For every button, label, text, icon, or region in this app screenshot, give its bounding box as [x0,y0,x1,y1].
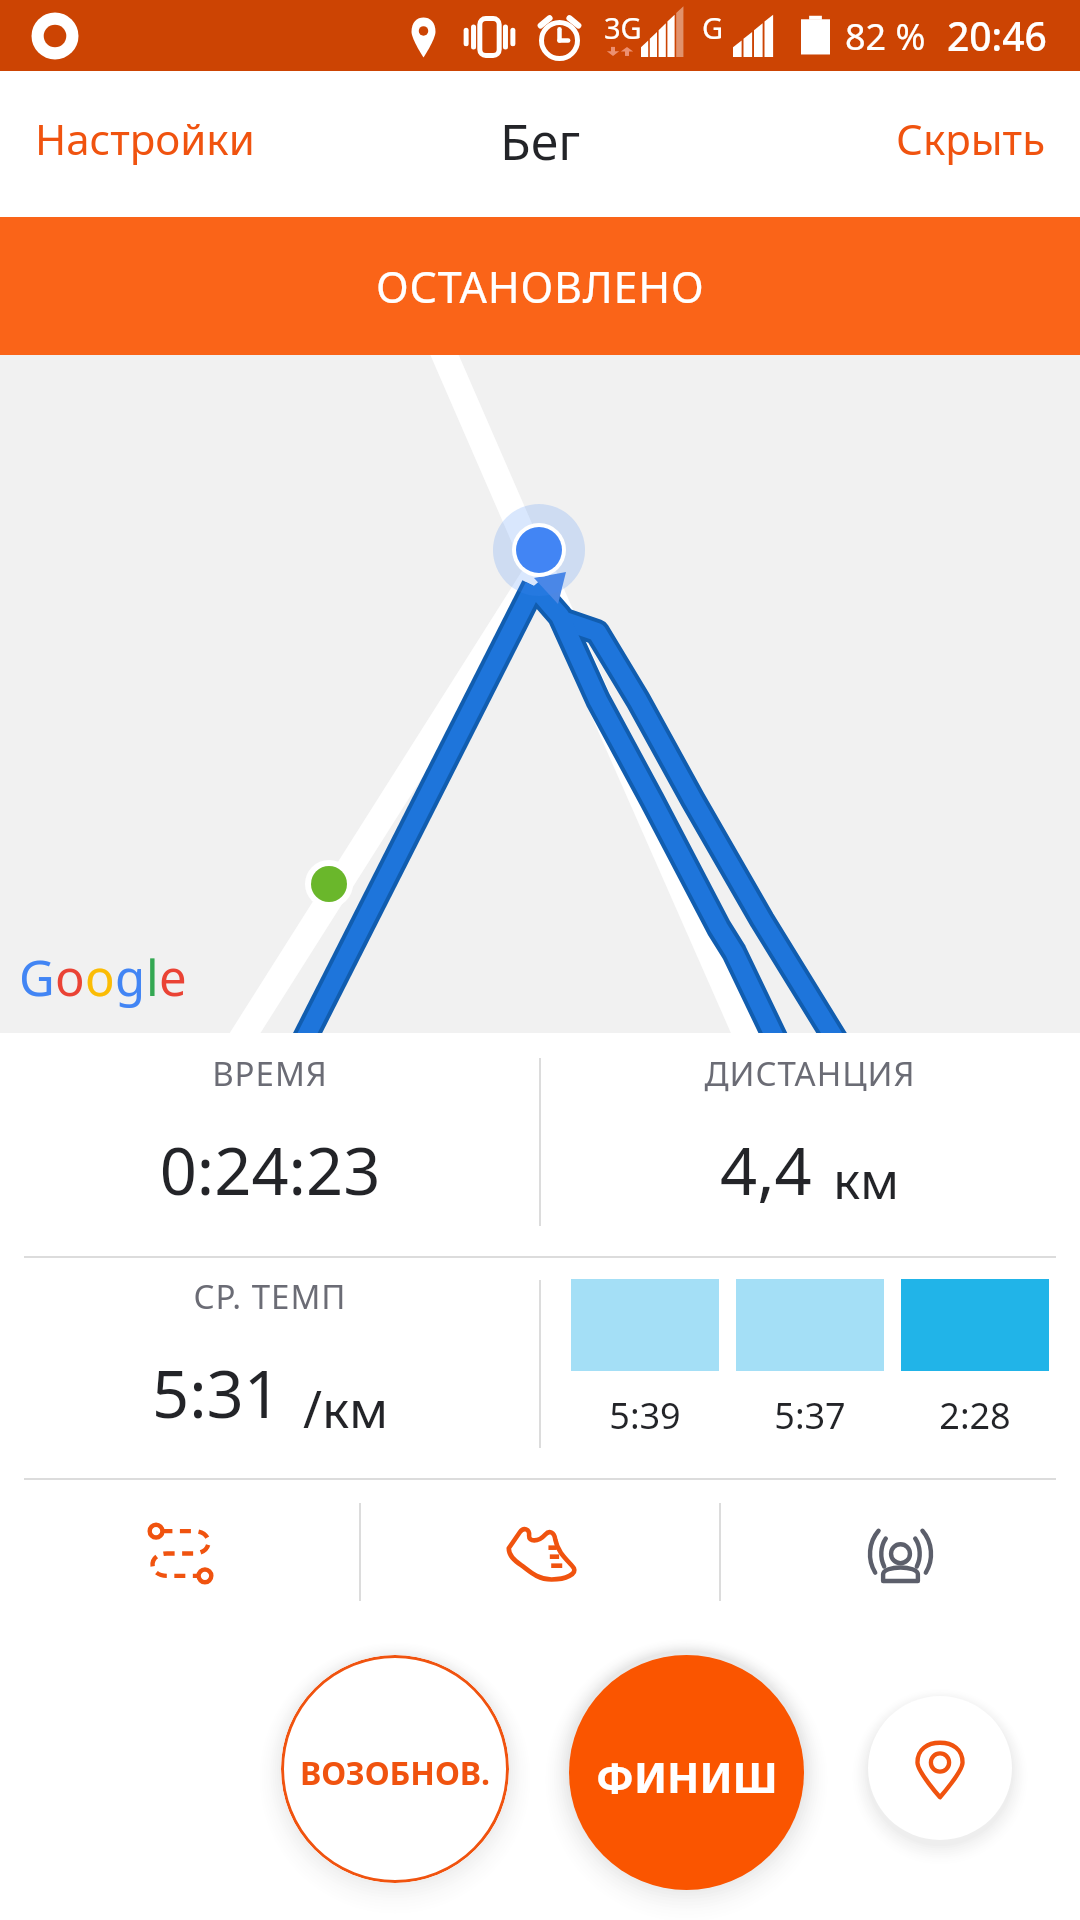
staticText: 5:37 [736,1391,884,1440]
staticText: 20:46 [947,9,1047,62]
staticText: ОСТАНОВЛЕНО [376,257,705,316]
staticText: 5:31 [152,1349,281,1438]
staticText: СР. ТЕМП [0,1274,540,1319]
button[interactable]: Настройки [0,82,294,199]
button[interactable]: Live tracking [720,1480,1080,1620]
button[interactable]: Route [0,1480,360,1620]
staticText: Скрыть [896,110,1046,167]
staticText: e [159,944,187,1011]
staticText: G [19,944,55,1011]
staticText: o [85,944,115,1011]
staticText: 5:39 [571,1391,719,1440]
staticText: 3G [604,8,642,47]
staticText: l [146,944,159,1011]
button[interactable]: ФИНИШ [569,1655,804,1890]
staticText: /км [303,1373,389,1442]
staticText: Настройки [35,110,255,167]
staticText: ВОЗОБНОВ. [300,1751,491,1795]
staticText: g [115,944,146,1011]
button[interactable]: Скрыть [857,82,1080,199]
staticText: ФИНИШ [596,1748,778,1805]
staticText: Бег [500,107,581,175]
button[interactable]: My location [868,1696,1012,1840]
staticText: ВРЕМЯ [0,1051,540,1096]
staticText: G [702,8,724,47]
staticText: 0:24:23 [0,1126,540,1215]
button[interactable]: ВОЗОБНОВ. [281,1655,509,1883]
button[interactable]: Shoes [360,1480,720,1620]
staticText: o [55,944,85,1011]
staticText: ДИСТАНЦИЯ [540,1051,1080,1096]
staticText: км [833,1144,900,1213]
staticText: 2:28 [901,1391,1049,1440]
staticText: 82 % [845,12,926,61]
staticText: 4,4 [720,1126,812,1215]
